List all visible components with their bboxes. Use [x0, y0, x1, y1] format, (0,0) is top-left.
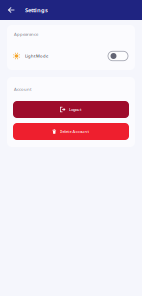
staticText: Delete Account: [60, 129, 90, 134]
button[interactable]: Light Mode: [7, 45, 135, 67]
button[interactable]: Back: [3, 0, 19, 20]
staticText: Appearance: [14, 31, 38, 37]
button[interactable]: Logout: [13, 101, 129, 118]
staticText: Logout: [69, 107, 82, 112]
staticText: Account: [14, 86, 32, 92]
button[interactable]: Delete Account: [13, 123, 129, 140]
staticText: Settings: [25, 6, 48, 14]
staticText: Light Mode: [25, 53, 48, 59]
